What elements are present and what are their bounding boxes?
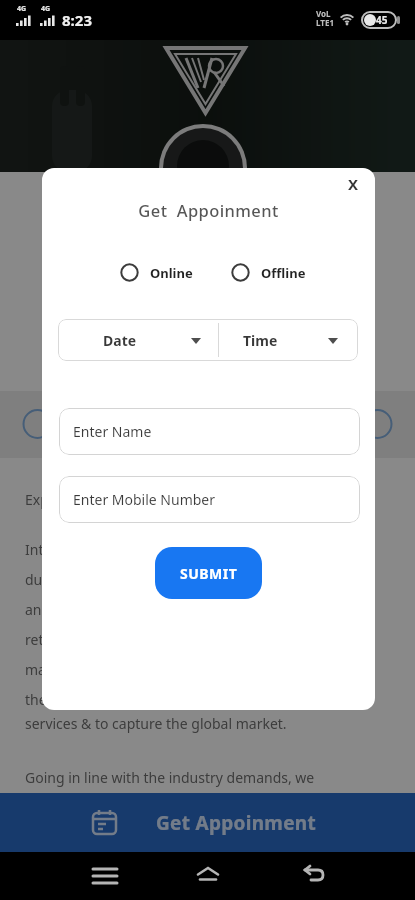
staticText: and art of delivering high quality inter… [25,600,293,619]
button[interactable] [190,858,226,894]
button[interactable] [87,858,123,894]
staticText: due course of time we have mastered the [25,570,298,589]
staticText: Offline [261,264,306,282]
staticText: Get Appoinment [156,810,317,836]
staticText: 45 [376,13,388,27]
button[interactable]: SUBMIT [155,547,262,599]
button[interactable]: Enter Mobile Number [59,476,360,523]
button[interactable] [295,858,331,894]
staticText: Online [150,264,193,282]
staticText: Experience our world class interior desi… [25,490,301,509]
staticText: Time [243,331,278,350]
staticText: Date [103,331,137,350]
button[interactable]: X [339,170,367,198]
staticText: 8:23 [62,10,92,30]
staticText: Enter Name [73,422,152,441]
staticText: maintaining global standards, we offer t… [25,660,305,679]
button[interactable]: Offline [231,263,306,282]
staticText: Interior designing is a passion for us a… [25,540,310,559]
staticText: returning customers is a proof of our go… [25,630,307,649]
button[interactable]: Get Appoinment [0,793,415,852]
staticText: X [348,174,359,194]
button[interactable]: Date [58,319,218,361]
staticText: Enter Mobile Number [73,490,216,509]
button[interactable]: Online [120,263,193,282]
staticText: 4G [17,4,27,14]
staticText: VoL [316,8,331,19]
staticText: SUBMIT [180,564,238,583]
staticText: services & to capture the global market. [25,714,287,733]
staticText: the best of our knowledge, skills and [25,690,266,709]
button[interactable]: Enter Name [59,408,360,455]
staticText: 4G [41,4,51,14]
staticText: Get Appoinment [42,199,375,221]
staticText: LTE1 [316,17,334,28]
button[interactable]: Time [219,319,358,361]
staticText: Going in line with the industry demands,… [25,768,315,787]
